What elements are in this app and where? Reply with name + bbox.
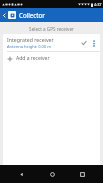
button[interactable]: Recent apps [73, 165, 91, 183]
staticText: Add a receiver [16, 55, 50, 62]
button[interactable]: Integrated receiver [3, 34, 100, 51]
button[interactable]: Home [43, 165, 61, 183]
staticText: Collector [19, 11, 45, 19]
staticText: Integrated receiver [7, 36, 54, 43]
button[interactable]: Back [12, 165, 30, 183]
staticText: 4:37 [94, 2, 102, 7]
staticText: Antenna height: 0.00 m [7, 44, 51, 49]
button[interactable]: Selected [79, 38, 89, 48]
button[interactable]: Navigate up [0, 8, 8, 22]
staticText: Select a GPS receiver [0, 26, 103, 32]
button[interactable]: More options [90, 36, 98, 50]
button[interactable]: Add a receiver [3, 52, 100, 65]
